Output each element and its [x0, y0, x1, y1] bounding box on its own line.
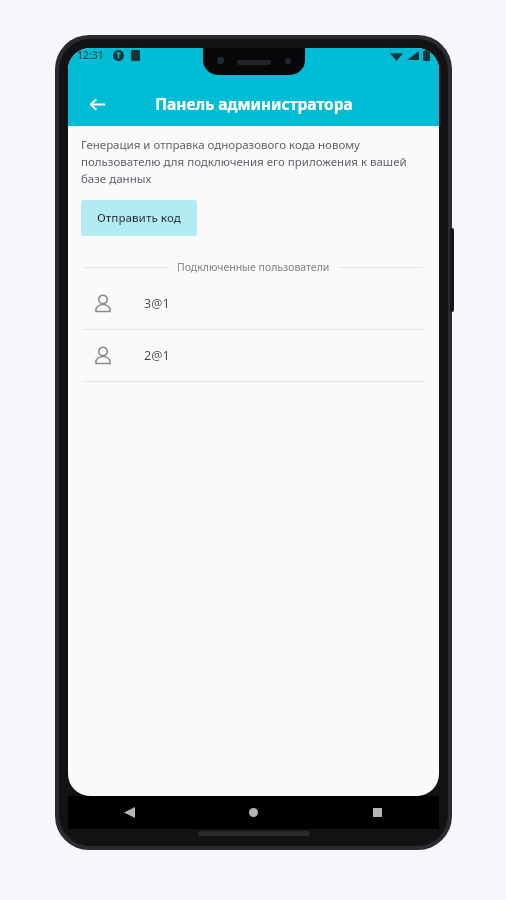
staticText: 3@1: [144, 295, 170, 312]
staticText: Подключенные пользователи: [177, 260, 330, 274]
staticText: 12:31: [77, 48, 104, 62]
button[interactable]: Отправить код: [81, 200, 197, 236]
button[interactable]: Back: [68, 796, 191, 829]
button[interactable]: 2@1: [68, 330, 439, 381]
button[interactable]: Home: [191, 796, 315, 829]
button[interactable]: 3@1: [68, 278, 439, 329]
staticText: 2@1: [144, 347, 170, 364]
staticText: Панель администратора: [155, 93, 353, 114]
button[interactable]: Back: [77, 84, 117, 124]
button[interactable]: Recent apps: [315, 796, 439, 829]
staticText: Отправить код: [97, 210, 181, 226]
staticText: Генерация и отправка одноразового кода н…: [81, 137, 419, 187]
